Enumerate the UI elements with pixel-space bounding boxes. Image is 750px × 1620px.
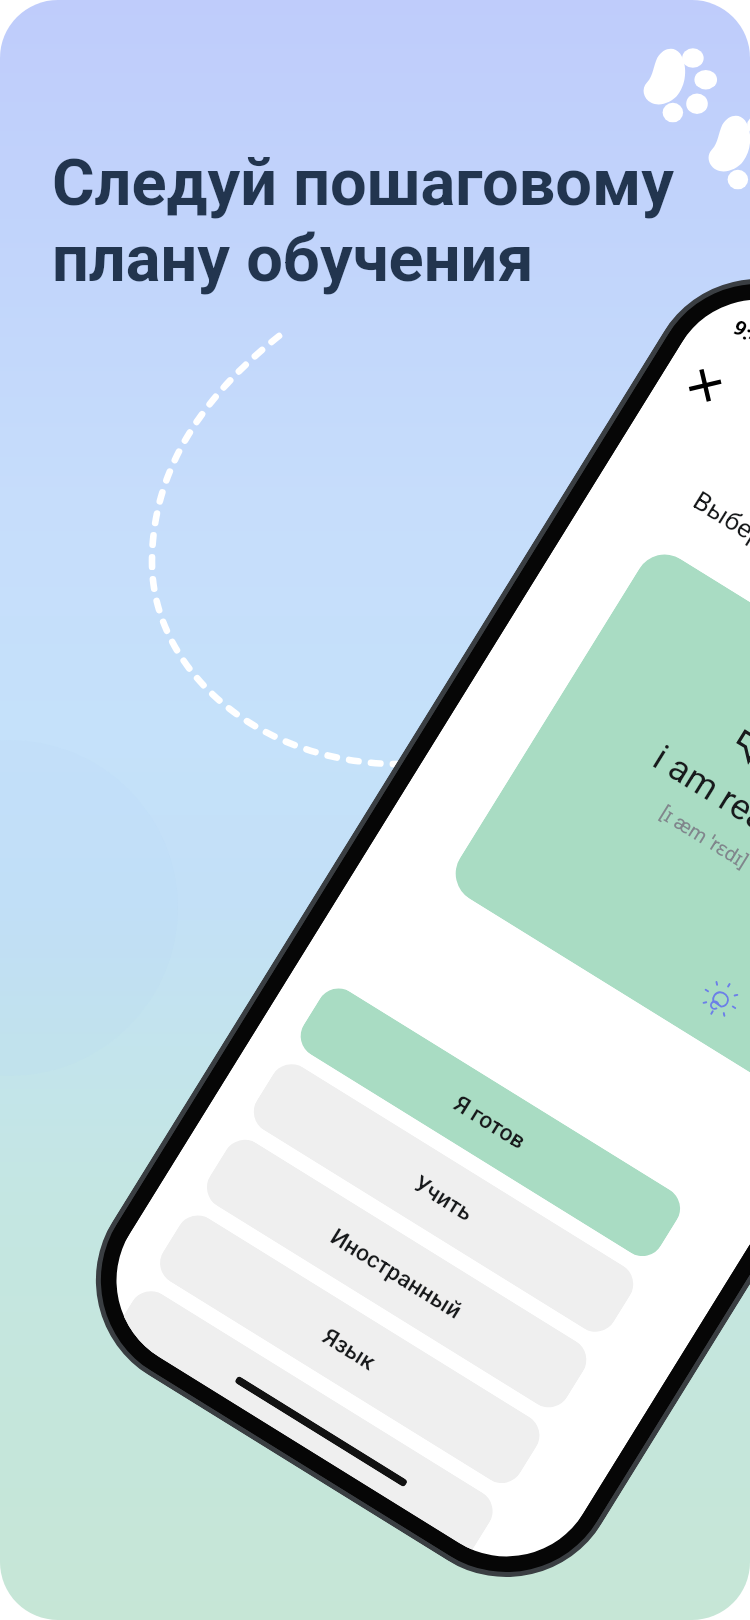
button[interactable]: Учить xyxy=(245,1056,641,1340)
staticText: i am ready xyxy=(646,737,750,860)
button[interactable]: Play audio xyxy=(444,543,750,1090)
staticText: Иностранный xyxy=(325,1223,467,1325)
button[interactable]: Язык xyxy=(152,1207,548,1491)
button[interactable]: Иностранный xyxy=(199,1131,595,1416)
button[interactable] xyxy=(115,1283,501,1551)
button[interactable]: Я готов xyxy=(292,980,688,1264)
staticText: 9:41 xyxy=(728,315,750,359)
staticText: [ɪ æm ˈrɛdɪ] xyxy=(655,799,750,874)
button[interactable]: Close xyxy=(673,353,737,416)
button[interactable]: Hint xyxy=(699,979,742,1022)
staticText: Следуй пошаговому xyxy=(52,145,675,221)
staticText: плану обучения xyxy=(52,221,534,297)
staticText: Язык xyxy=(318,1323,381,1376)
staticText: Выберите перевод xyxy=(688,485,750,631)
staticText: Учить xyxy=(409,1170,478,1227)
staticText: Я готов xyxy=(449,1090,531,1155)
button[interactable]: Play audio xyxy=(727,716,750,779)
